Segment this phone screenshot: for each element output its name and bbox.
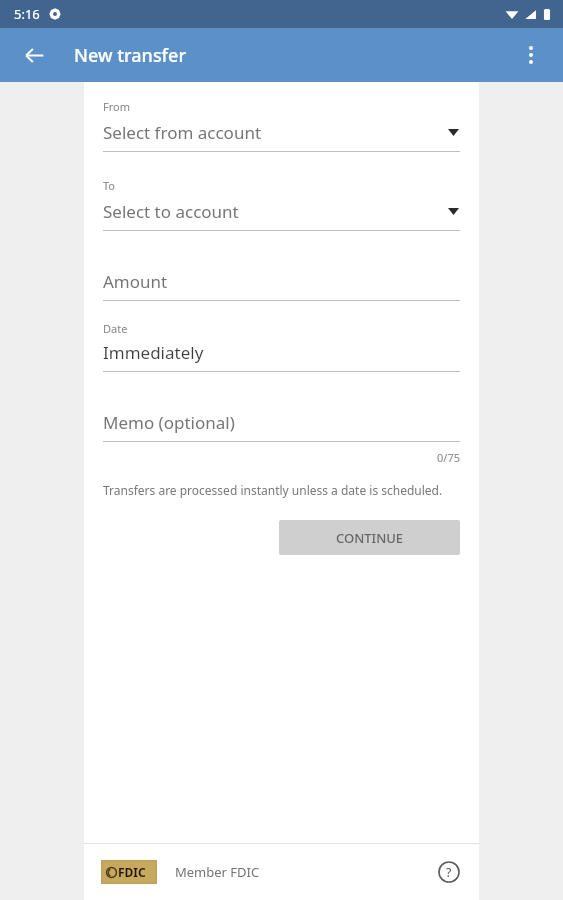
staticText: Member FDIC [175, 863, 260, 881]
staticText: Date [103, 321, 128, 336]
staticText: New transfer [74, 43, 186, 68]
staticText: From [103, 99, 130, 114]
button[interactable]: CONTINUE [279, 520, 460, 555]
staticText: Memo (optional) [103, 411, 235, 434]
staticText: To [103, 178, 116, 193]
button[interactable]: Amount [103, 270, 460, 301]
staticText: 5:16 [14, 5, 40, 23]
staticText: FDIC [118, 864, 146, 880]
staticText: ? [446, 864, 452, 880]
button[interactable]: Back [14, 35, 54, 75]
button[interactable]: Select from account [103, 121, 460, 152]
staticText: 0/75 [437, 450, 460, 465]
staticText: Transfers are processed instantly unless… [103, 482, 443, 498]
staticText: Immediately [103, 341, 204, 364]
button[interactable]: Select to account [103, 200, 460, 231]
button[interactable]: Memo (optional) [103, 411, 460, 442]
staticText: Select from account [103, 121, 262, 144]
staticText: Amount [103, 270, 168, 293]
button[interactable]: Help [431, 854, 467, 890]
staticText: CONTINUE [336, 529, 404, 547]
staticText: Select to account [103, 200, 239, 223]
button[interactable]: More options [511, 35, 551, 75]
button[interactable]: Immediately [103, 341, 460, 372]
